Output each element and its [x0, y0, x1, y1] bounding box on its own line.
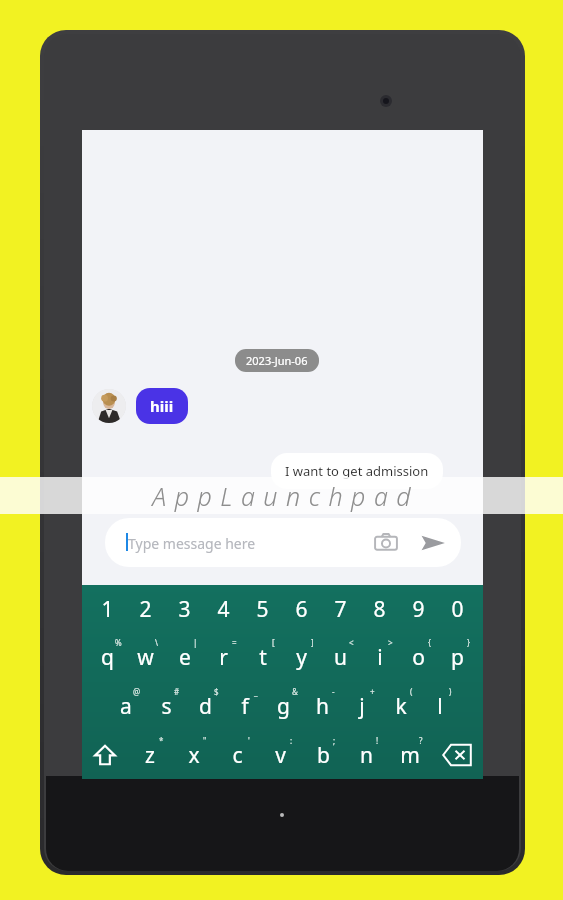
staticText: r	[219, 643, 228, 672]
staticText: 0	[451, 595, 464, 624]
button[interactable]: r	[204, 633, 243, 682]
button[interactable]: 1	[88, 585, 126, 633]
button[interactable]: f	[225, 682, 264, 731]
staticText: $	[214, 686, 219, 697]
staticText: }	[467, 637, 471, 648]
button[interactable]: u	[321, 633, 360, 682]
staticText: o	[412, 643, 425, 672]
button[interactable]: hiii	[136, 388, 188, 424]
button[interactable]: 8	[360, 585, 399, 633]
button[interactable]: n	[345, 731, 388, 779]
staticText: <	[349, 637, 354, 648]
staticText: "	[203, 735, 207, 746]
staticText: q	[101, 643, 114, 672]
staticText: *	[159, 735, 164, 746]
button[interactable]: k	[381, 682, 420, 731]
staticText: i	[377, 643, 383, 672]
button[interactable]: s	[146, 682, 186, 731]
button[interactable]: I want to get admission	[271, 453, 443, 489]
staticText: [	[272, 637, 275, 648]
button[interactable]: 6	[282, 585, 321, 633]
button[interactable]: o	[399, 633, 438, 682]
staticText: 1	[101, 595, 114, 624]
staticText: a	[120, 692, 132, 721]
staticText: ?	[419, 735, 423, 746]
button[interactable]: Attach photo	[373, 530, 399, 556]
staticText: b	[317, 741, 330, 770]
button[interactable]: b	[302, 731, 345, 779]
button[interactable]: e	[165, 633, 204, 682]
button[interactable]: 0	[438, 585, 477, 633]
staticText: j	[359, 692, 365, 721]
button[interactable]: z	[128, 731, 172, 779]
button[interactable]: w	[126, 633, 165, 682]
staticText: w	[137, 643, 154, 672]
button[interactable]: 2	[126, 585, 165, 633]
staticText: 4	[217, 595, 230, 624]
staticText: 3	[178, 595, 191, 624]
staticText: t	[259, 643, 267, 672]
staticText: 7	[334, 595, 347, 624]
staticText: n	[360, 741, 373, 770]
button[interactable]: i	[360, 633, 399, 682]
staticText: \	[155, 637, 158, 648]
staticText: (	[410, 686, 413, 697]
button[interactable]: v	[259, 731, 302, 779]
staticText: y	[296, 643, 307, 672]
staticText: I want to get admission	[285, 462, 429, 480]
staticText: :	[290, 735, 293, 746]
staticText: +	[370, 686, 375, 697]
staticText: >	[388, 637, 393, 648]
button[interactable]: 9	[399, 585, 438, 633]
button[interactable]: q	[88, 633, 126, 682]
button[interactable]: Send	[420, 530, 446, 556]
staticText: z	[145, 741, 155, 770]
staticText: p	[451, 643, 464, 672]
staticText: =	[232, 637, 237, 648]
staticText: d	[199, 692, 212, 721]
staticText: |	[193, 637, 198, 648]
staticText: A p p L a u n c h p a d	[152, 479, 412, 513]
button[interactable]: h	[303, 682, 342, 731]
button[interactable]: j	[342, 682, 381, 731]
button[interactable]: m	[388, 731, 431, 779]
button[interactable]: Backspace	[431, 731, 483, 779]
staticText: '	[248, 735, 250, 746]
staticText: Type message here	[128, 534, 256, 553]
button[interactable]: 3	[165, 585, 204, 633]
staticText: k	[395, 692, 407, 721]
button[interactable]: x	[172, 731, 216, 779]
staticText: f	[241, 692, 249, 721]
staticText: )	[449, 686, 452, 697]
button[interactable]: 2023-Jun-06	[235, 349, 319, 372]
button[interactable]: Contact avatar	[92, 389, 126, 423]
staticText: e	[179, 643, 191, 672]
button[interactable]: a	[106, 682, 146, 731]
button[interactable]: l	[420, 682, 459, 731]
staticText: 2023-Jun-06	[246, 353, 308, 368]
staticText: ;	[333, 735, 336, 746]
staticText: c	[232, 741, 243, 770]
button[interactable]: t	[243, 633, 282, 682]
staticText: h	[316, 692, 329, 721]
staticText: -	[332, 686, 335, 697]
staticText: s	[161, 692, 172, 721]
button[interactable]: y	[282, 633, 321, 682]
button[interactable]: 7	[321, 585, 360, 633]
staticText: 5	[256, 595, 269, 624]
staticText: g	[277, 692, 290, 721]
staticText: 8	[373, 595, 386, 624]
staticText: 6	[295, 595, 308, 624]
button[interactable]: Shift	[82, 731, 128, 779]
staticText: {	[428, 637, 432, 648]
staticText: v	[275, 741, 286, 770]
button[interactable]: d	[186, 682, 225, 731]
staticText: 2	[139, 595, 152, 624]
staticText: l	[437, 692, 443, 721]
button[interactable]: g	[264, 682, 303, 731]
staticText: ]	[311, 637, 314, 648]
button[interactable]: p	[438, 633, 477, 682]
button[interactable]: 4	[204, 585, 243, 633]
button[interactable]: c	[216, 731, 259, 779]
button[interactable]: 5	[243, 585, 282, 633]
